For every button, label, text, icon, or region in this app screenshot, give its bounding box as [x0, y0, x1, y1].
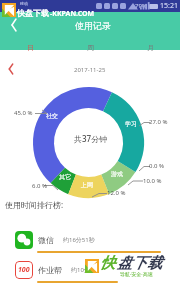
staticText: 日 — [27, 43, 34, 52]
staticText: 社交 — [46, 112, 58, 120]
button[interactable]: Back — [4, 15, 24, 35]
staticText: 使用时间排行榜: — [5, 199, 64, 210]
staticText: 2017-11-25 — [74, 66, 106, 74]
staticText: 45.0 % — [14, 109, 33, 117]
button[interactable]: 微信 — [0, 231, 180, 253]
staticText: 100 — [18, 265, 30, 275]
staticText: 导航·安全·高速 — [120, 271, 153, 278]
button[interactable]: 100 — [0, 261, 180, 283]
staticText: 15:21 — [160, 1, 178, 11]
staticText: 移动 — [20, 1, 28, 6]
staticText: 共37分钟 — [74, 133, 108, 144]
button[interactable]: 月 — [120, 39, 180, 55]
staticText: 快 — [100, 254, 115, 273]
staticText: 6.0 % — [32, 182, 48, 190]
staticText: 12.0 % — [107, 189, 126, 197]
staticText: 快盘下载 — [17, 8, 49, 18]
staticText: 微信 — [38, 235, 54, 245]
staticText: 0.0 % — [149, 162, 165, 170]
staticText: 27.0 % — [149, 118, 168, 126]
staticText: 约16分51秒 — [63, 236, 95, 244]
staticText: 作业帮 — [38, 265, 62, 275]
staticText: -KKPAN.COM — [50, 9, 95, 19]
staticText: 其它 — [59, 173, 71, 181]
staticText: 使用记录 — [75, 20, 111, 31]
staticText: 10.0 % — [143, 177, 162, 185]
staticText: 上网 — [81, 181, 93, 189]
staticText: 学习 — [125, 120, 137, 128]
button[interactable]: 日 — [0, 39, 60, 55]
button[interactable]: Previous day — [3, 61, 19, 77]
staticText: 月 — [147, 43, 154, 52]
button[interactable]: 周 — [60, 39, 120, 55]
staticText: 游戏 — [111, 170, 123, 178]
staticText: 盘下载 — [117, 254, 162, 273]
staticText: 79% — [135, 2, 147, 10]
staticText: 周 — [87, 43, 94, 52]
staticText: 约10分 — [71, 266, 90, 274]
